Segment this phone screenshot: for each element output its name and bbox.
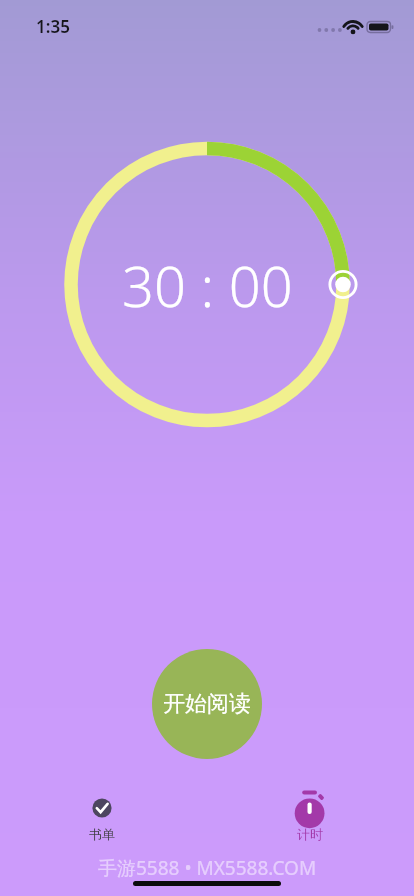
staticText: 1:35 — [36, 15, 70, 38]
staticText: 开始阅读 — [163, 690, 251, 718]
button[interactable]: 书单 — [62, 790, 142, 848]
staticText: 30 : 00 — [122, 247, 293, 310]
staticText: 书单 — [89, 826, 115, 842]
button[interactable]: 开始阅读 — [152, 649, 262, 759]
button[interactable]: 计时 — [270, 790, 350, 848]
staticText: 计时 — [297, 826, 323, 842]
staticText: 手游5588 • MX5588.COM — [98, 855, 317, 881]
